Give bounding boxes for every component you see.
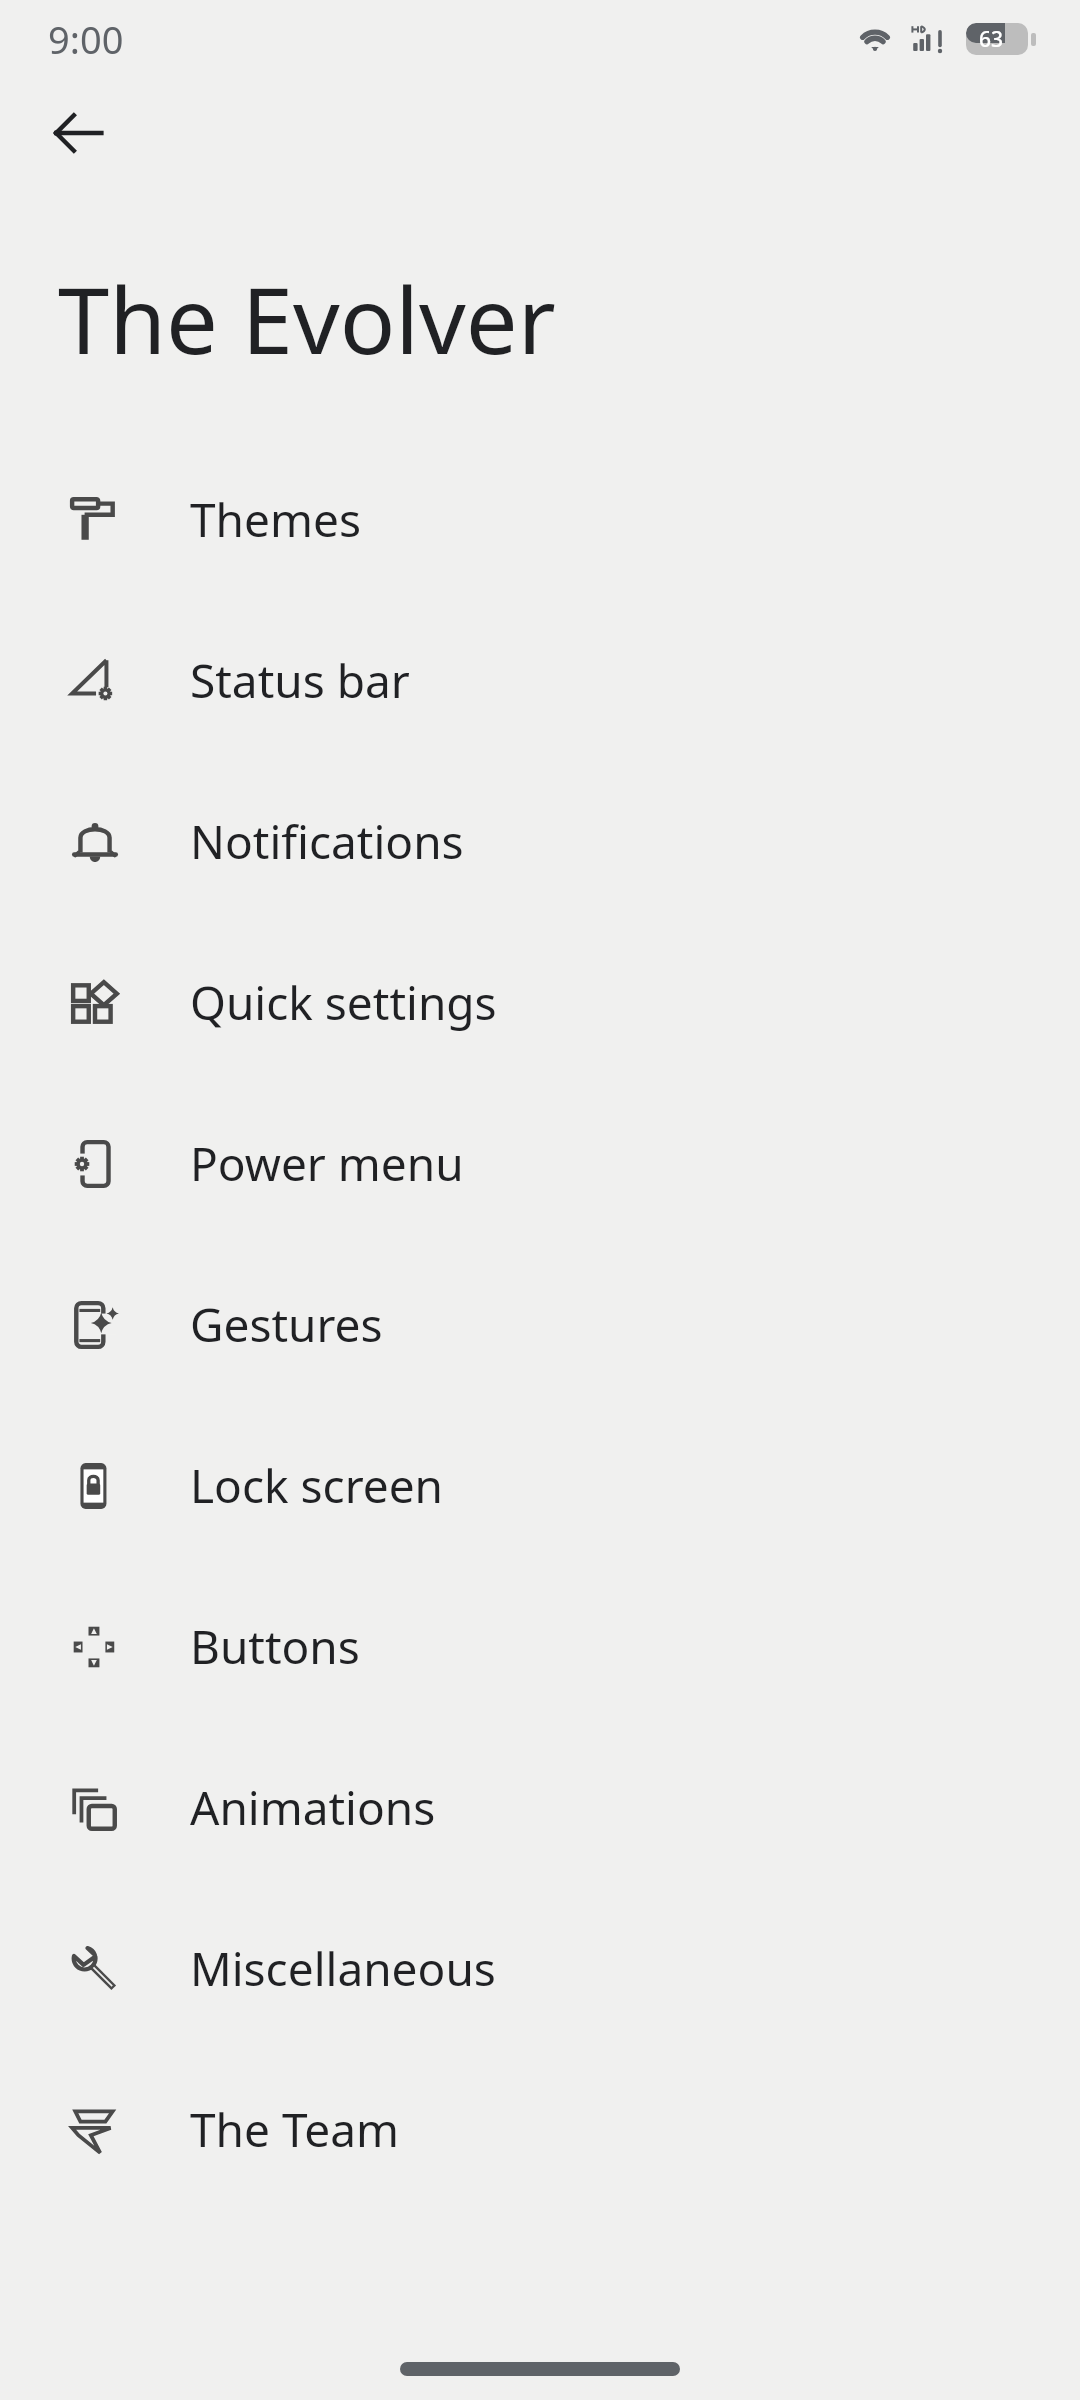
button[interactable]: Power menu bbox=[0, 1083, 1080, 1244]
button[interactable]: Buttons bbox=[0, 1566, 1080, 1727]
staticText: Lock screen bbox=[190, 1454, 444, 1517]
staticText: Notifications bbox=[190, 810, 464, 873]
staticText: Gestures bbox=[190, 1293, 383, 1356]
button[interactable]: Lock screen bbox=[0, 1405, 1080, 1566]
button[interactable]: Gestures bbox=[0, 1244, 1080, 1405]
button[interactable]: Animations bbox=[0, 1727, 1080, 1888]
staticText: 9:00 bbox=[48, 13, 124, 65]
staticText: Buttons bbox=[190, 1615, 360, 1678]
staticText: Status bar bbox=[190, 649, 410, 712]
button[interactable]: Miscellaneous bbox=[0, 1888, 1080, 2049]
staticText: Themes bbox=[190, 488, 361, 551]
button[interactable]: Back bbox=[30, 85, 126, 181]
staticText: Quick settings bbox=[190, 971, 497, 1034]
staticText: The Evolver bbox=[58, 256, 556, 381]
staticText: The Team bbox=[190, 2098, 400, 2161]
button[interactable]: Themes bbox=[0, 439, 1080, 600]
staticText: Miscellaneous bbox=[190, 1937, 496, 2000]
button[interactable]: Notifications bbox=[0, 761, 1080, 922]
staticText: Power menu bbox=[190, 1132, 464, 1195]
staticText: 63 bbox=[979, 25, 1004, 54]
button[interactable]: Status bar bbox=[0, 600, 1080, 761]
staticText: Animations bbox=[190, 1776, 436, 1839]
button[interactable]: Quick settings bbox=[0, 922, 1080, 1083]
button[interactable]: The Team bbox=[0, 2049, 1080, 2210]
